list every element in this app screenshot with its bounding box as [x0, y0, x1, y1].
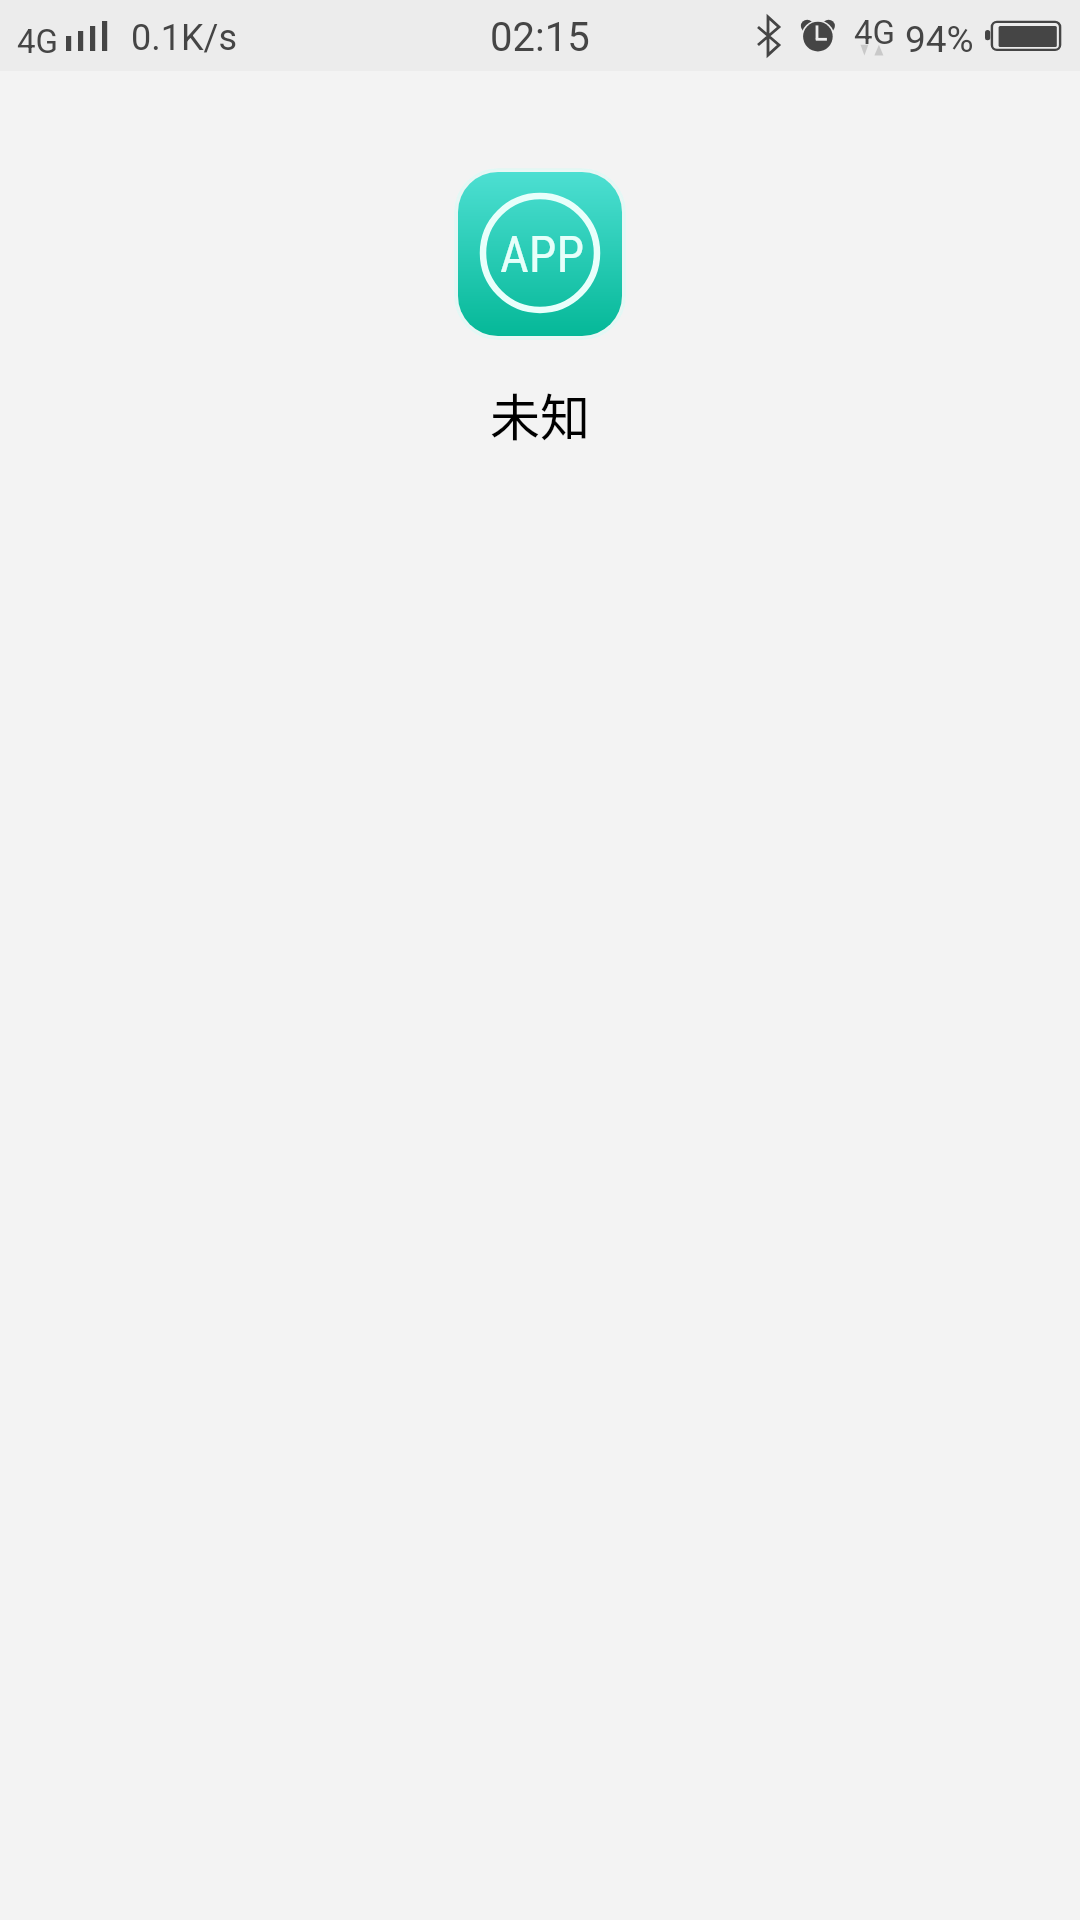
staticText: 02:15: [490, 14, 590, 61]
other: Mobile data activity: [860, 44, 892, 57]
other: Signal strength: [66, 21, 108, 51]
staticText: 94%: [905, 18, 974, 61]
staticText: 4G: [17, 22, 59, 61]
button[interactable]: 未知: [490, 378, 590, 450]
staticText: 0.1K/s: [131, 17, 237, 59]
staticText: 4G: [854, 13, 896, 52]
other: Alarm: [800, 19, 836, 53]
other: Battery 94 percent: [985, 19, 1062, 49]
button[interactable]: Unknown app: [454, 168, 626, 340]
staticText: APP: [500, 226, 585, 285]
other: Bluetooth: [758, 16, 780, 56]
